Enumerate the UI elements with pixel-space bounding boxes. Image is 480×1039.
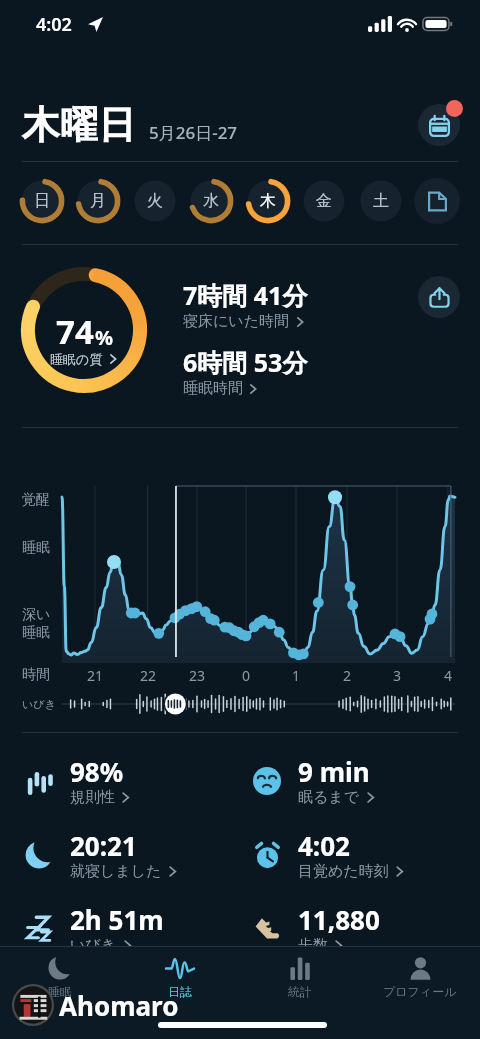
staticText: 9 min xyxy=(298,754,370,789)
button[interactable]: 4:02 xyxy=(248,824,468,886)
staticText: 睡眠 xyxy=(22,539,50,557)
staticText: 3 xyxy=(393,666,402,685)
staticText: 睡眠の質 xyxy=(50,351,103,367)
button[interactable]: 7時間 41分 xyxy=(183,278,308,331)
button[interactable]: 11,880 xyxy=(248,898,468,960)
staticText: 歩数 xyxy=(298,936,328,955)
staticText: % xyxy=(95,324,114,351)
button[interactable]: 6時間 53分 xyxy=(183,345,308,398)
staticText: 土 xyxy=(373,191,389,211)
staticText: 寝床にいた時間 xyxy=(183,312,290,331)
staticText: 火 xyxy=(147,191,163,211)
staticText: 21 xyxy=(87,666,104,685)
staticText: 日誌 xyxy=(168,984,192,999)
staticText: 11,880 xyxy=(298,902,380,937)
staticText: 74 xyxy=(56,309,94,354)
staticText: いびき xyxy=(70,936,117,955)
staticText: 2 xyxy=(343,666,352,685)
button[interactable]: 日 xyxy=(18,177,66,225)
button[interactable]: 統計 xyxy=(240,949,360,1003)
staticText: 1 xyxy=(292,666,301,685)
button[interactable]: 9 min xyxy=(248,750,468,812)
button[interactable]: 月 xyxy=(74,177,122,225)
staticText: 統計 xyxy=(288,984,312,999)
staticText: 4 xyxy=(444,666,453,685)
staticText: 覚醒 xyxy=(22,491,50,509)
staticText: 水 xyxy=(203,191,219,211)
staticText: 目覚めた時刻 xyxy=(298,862,389,881)
staticText: 98% xyxy=(70,754,124,789)
staticText: 0 xyxy=(242,666,251,685)
staticText: 金 xyxy=(316,191,332,211)
staticText: 4:02 xyxy=(36,12,72,37)
button[interactable]: 木 xyxy=(244,177,292,225)
button[interactable]: 74 xyxy=(20,266,148,394)
staticText: 眠るまで xyxy=(298,788,360,807)
button[interactable]: 98% xyxy=(20,750,240,812)
button[interactable]: Notes xyxy=(413,177,461,225)
staticText: 22 xyxy=(140,666,157,685)
staticText: 日 xyxy=(34,191,50,211)
staticText: 7時間 41分 xyxy=(183,278,308,312)
button[interactable]: 火 xyxy=(131,177,179,225)
staticText: 木 xyxy=(260,191,276,211)
staticText: 2h 51m xyxy=(70,902,164,937)
staticText: 月 xyxy=(90,191,106,211)
button[interactable]: 土 xyxy=(357,177,405,225)
staticText: 木曜日 xyxy=(22,101,136,149)
button[interactable]: 金 xyxy=(300,177,348,225)
button[interactable]: 睡眠 xyxy=(0,949,120,1003)
staticText: 時間 xyxy=(22,666,50,684)
button[interactable]: プロフィール xyxy=(360,949,480,1003)
button[interactable]: Share xyxy=(418,276,460,318)
staticText: 深い 睡眠 xyxy=(22,606,51,642)
staticText: いびき xyxy=(22,697,56,711)
staticText: 規則性 xyxy=(70,788,115,807)
staticText: 睡眠時間 xyxy=(183,379,243,398)
staticText: Ahomaro xyxy=(59,988,179,1023)
staticText: 睡眠 xyxy=(48,984,72,999)
button[interactable]: Calendar xyxy=(416,102,462,148)
staticText: 23 xyxy=(189,666,206,685)
staticText: 4:02 xyxy=(298,828,350,863)
staticText: 6時間 53分 xyxy=(183,345,308,379)
button[interactable]: 日誌 xyxy=(120,949,240,1003)
staticText: 20:21 xyxy=(70,828,137,863)
button[interactable]: 20:21 xyxy=(20,824,240,886)
staticText: プロフィール xyxy=(383,984,457,999)
staticText: 就寝しました xyxy=(70,862,162,881)
staticText: 5月26日-27 xyxy=(149,121,238,144)
button[interactable]: 水 xyxy=(187,177,235,225)
button[interactable]: 2h 51m xyxy=(20,898,240,960)
